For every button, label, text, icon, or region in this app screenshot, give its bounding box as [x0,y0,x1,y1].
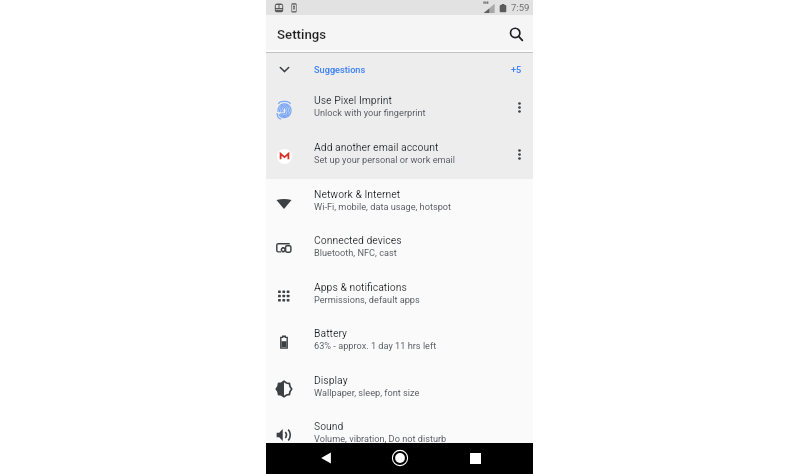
staticText: Add another email account [314,141,439,153]
staticText: Connected devices [314,234,402,246]
button[interactable]: Back [310,443,340,473]
button[interactable]: Search [504,21,528,45]
button[interactable]: Network & Internet [266,179,533,226]
button[interactable]: Display [266,365,533,412]
staticText: 7:59 [511,2,530,13]
button[interactable]: Add another email account [266,132,533,179]
staticText: Bluetooth, NFC, cast [314,247,397,258]
staticText: 63% - approx. 1 day 11 hrs left [314,340,437,351]
staticText: Use Pixel Imprint [314,94,392,106]
button[interactable]: More options [505,132,533,179]
button[interactable]: Connected devices [266,226,533,272]
staticText: Volume, vibration, Do not disturb [314,433,447,444]
staticText: Set up your personal or work email [314,154,456,165]
staticText: +5 [511,64,522,75]
staticText: Battery [314,327,347,339]
staticText: Wallpaper, sleep, font size [314,387,420,398]
staticText: Apps & notifications [314,281,407,293]
staticText: Network & Internet [314,188,401,200]
button[interactable]: Suggestions [266,53,533,85]
staticText: Permissions, default apps [314,294,420,305]
button[interactable]: Battery [266,319,533,365]
button[interactable]: Use Pixel Imprint [266,85,533,132]
staticText: Suggestions [314,64,366,75]
button[interactable]: Recents [460,443,490,473]
staticText: Wi-Fi, mobile, data usage, hotspot [314,201,452,212]
staticText: Settings [277,27,327,42]
button[interactable]: Home [385,443,415,473]
button[interactable]: Sound [266,412,533,458]
staticText: Sound [314,420,344,432]
staticText: Display [314,374,348,386]
staticText: Unlock with your fingerprint [314,107,426,118]
button[interactable]: More options [505,85,533,132]
button[interactable]: Apps & notifications [266,272,533,319]
